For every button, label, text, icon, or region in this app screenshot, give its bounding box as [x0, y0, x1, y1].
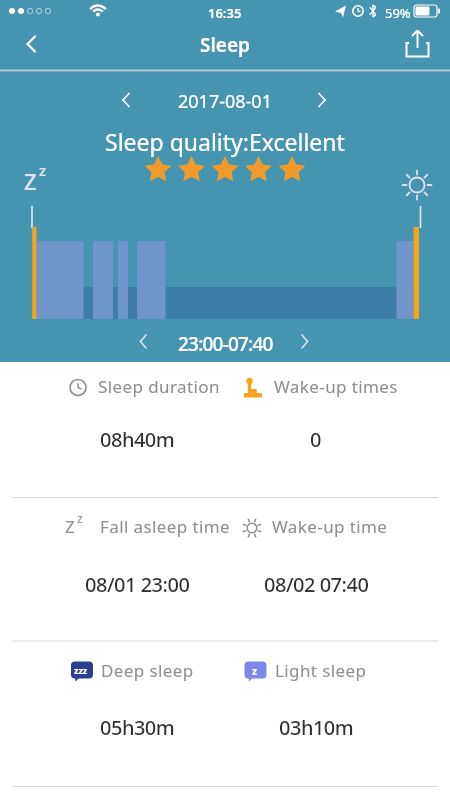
staticText: 08/01 23:00 — [85, 571, 190, 598]
staticText: 0 — [310, 426, 321, 453]
staticText: 05h30m — [100, 714, 175, 741]
staticText: Z — [65, 515, 75, 538]
staticText: zzz — [74, 664, 88, 676]
staticText: 08/02 07:40 — [264, 571, 369, 598]
staticText: Sleep — [200, 32, 250, 58]
staticText: z — [252, 664, 257, 678]
staticText: 03h10m — [279, 714, 354, 741]
staticText: 23:00-07:40 — [178, 331, 273, 357]
staticText: Wake-up time — [272, 515, 388, 538]
staticText: 16:35 — [208, 4, 242, 22]
staticText: 2017-08-01 — [178, 89, 272, 114]
staticText: Deep sleep — [101, 659, 194, 682]
staticText: Z — [24, 166, 37, 196]
staticText: Fall asleep time — [100, 515, 231, 538]
staticText: Sleep duration — [98, 375, 220, 398]
staticText: 59% — [385, 4, 411, 22]
staticText: z — [77, 510, 83, 526]
staticText: z — [39, 160, 47, 180]
staticText: Light sleep — [275, 659, 367, 682]
staticText: Wake-up times — [274, 375, 398, 398]
staticText: Sleep quality:Excellent — [105, 126, 345, 157]
staticText: 08h40m — [100, 426, 175, 453]
